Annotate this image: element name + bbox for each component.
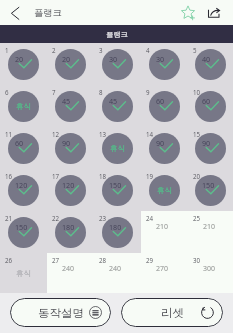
staticText: 29: [146, 256, 154, 264]
staticText: 플랭크: [34, 7, 62, 19]
staticText: 13: [99, 130, 107, 138]
button[interactable]: 11: [0, 127, 47, 169]
staticText: 23: [99, 214, 107, 222]
button[interactable]: 15: [188, 127, 233, 169]
staticText: 12: [52, 130, 60, 138]
button[interactable]: 5: [188, 43, 233, 85]
staticText: 30: [109, 54, 118, 64]
staticText: 270: [156, 264, 169, 274]
staticText: 240: [109, 264, 122, 274]
button[interactable]: 4: [141, 43, 188, 85]
button[interactable]: Add to favorites: [176, 1, 200, 25]
button[interactable]: 10: [188, 85, 233, 127]
staticText: 휴식: [110, 144, 125, 153]
staticText: 19: [146, 172, 154, 180]
button[interactable]: 21: [0, 211, 47, 253]
staticText: 210: [203, 222, 216, 232]
staticText: 150: [15, 222, 28, 232]
staticText: 150: [109, 180, 122, 190]
button[interactable]: 20: [188, 169, 233, 211]
button[interactable]: 23: [94, 211, 141, 253]
staticText: 180: [62, 222, 75, 232]
button[interactable]: 16: [0, 169, 47, 211]
button[interactable]: 9: [141, 85, 188, 127]
staticText: 45: [62, 96, 71, 106]
button[interactable]: 리셋: [121, 298, 223, 327]
staticText: 40: [202, 54, 211, 64]
button[interactable]: Back: [0, 0, 26, 25]
staticText: 21: [5, 214, 13, 222]
staticText: 180: [109, 222, 122, 232]
staticText: 16: [5, 172, 13, 180]
staticText: 7: [52, 88, 56, 96]
staticText: 45: [109, 96, 118, 106]
staticText: 120: [15, 180, 28, 190]
staticText: 17: [52, 172, 60, 180]
staticText: 90: [202, 138, 211, 148]
staticText: 150: [202, 180, 215, 190]
button[interactable]: 2: [47, 43, 94, 85]
staticText: 24: [146, 214, 154, 222]
staticText: 3: [99, 46, 103, 54]
staticText: 30: [156, 54, 165, 64]
staticText: 90: [62, 138, 71, 148]
staticText: 8: [99, 88, 103, 96]
staticText: 90: [156, 138, 165, 148]
staticText: 14: [146, 130, 154, 138]
staticText: 25: [193, 214, 201, 222]
staticText: 휴식: [157, 186, 172, 195]
button[interactable]: 동작설명: [10, 298, 111, 327]
staticText: 210: [156, 222, 169, 232]
button[interactable]: 18: [94, 169, 141, 211]
button[interactable]: 3: [94, 43, 141, 85]
button[interactable]: 17: [47, 169, 94, 211]
button[interactable]: 13: [94, 127, 141, 169]
staticText: 60: [15, 138, 24, 148]
staticText: 리셋: [161, 306, 184, 320]
staticText: 9: [146, 88, 150, 96]
staticText: 11: [5, 130, 13, 138]
staticText: 6: [5, 88, 9, 96]
staticText: 30: [193, 256, 201, 264]
staticText: 1: [5, 46, 9, 54]
staticText: 20: [15, 54, 24, 64]
staticText: 120: [62, 180, 75, 190]
staticText: 18: [99, 172, 107, 180]
staticText: 240: [62, 264, 75, 274]
staticText: 22: [52, 214, 60, 222]
button[interactable]: 8: [94, 85, 141, 127]
staticText: 4: [146, 46, 150, 54]
button[interactable]: 25: [188, 211, 233, 253]
button[interactable]: Share: [202, 1, 226, 25]
staticText: 27: [52, 256, 60, 264]
staticText: 휴식: [16, 102, 31, 111]
staticText: 20: [193, 172, 201, 180]
button[interactable]: 7: [47, 85, 94, 127]
staticText: 60: [202, 96, 211, 106]
staticText: 휴식: [16, 269, 31, 278]
staticText: 15: [193, 130, 201, 138]
button[interactable]: 27: [47, 253, 94, 293]
staticText: 60: [156, 96, 165, 106]
button[interactable]: 30: [188, 253, 233, 293]
button[interactable]: 6: [0, 85, 47, 127]
button[interactable]: 22: [47, 211, 94, 253]
staticText: 2: [52, 46, 56, 54]
staticText: 20: [62, 54, 71, 64]
button[interactable]: 24: [141, 211, 188, 253]
staticText: 플랭크: [106, 30, 128, 39]
staticText: 28: [99, 256, 107, 264]
button[interactable]: 29: [141, 253, 188, 293]
button[interactable]: 14: [141, 127, 188, 169]
staticText: 10: [193, 88, 201, 96]
staticText: 동작설명: [38, 306, 84, 320]
button[interactable]: 28: [94, 253, 141, 293]
button[interactable]: 1: [0, 43, 47, 85]
staticText: 300: [203, 264, 216, 274]
button[interactable]: 26: [0, 253, 47, 293]
staticText: 5: [193, 46, 197, 54]
button[interactable]: 12: [47, 127, 94, 169]
staticText: 26: [5, 256, 13, 264]
button[interactable]: 19: [141, 169, 188, 211]
